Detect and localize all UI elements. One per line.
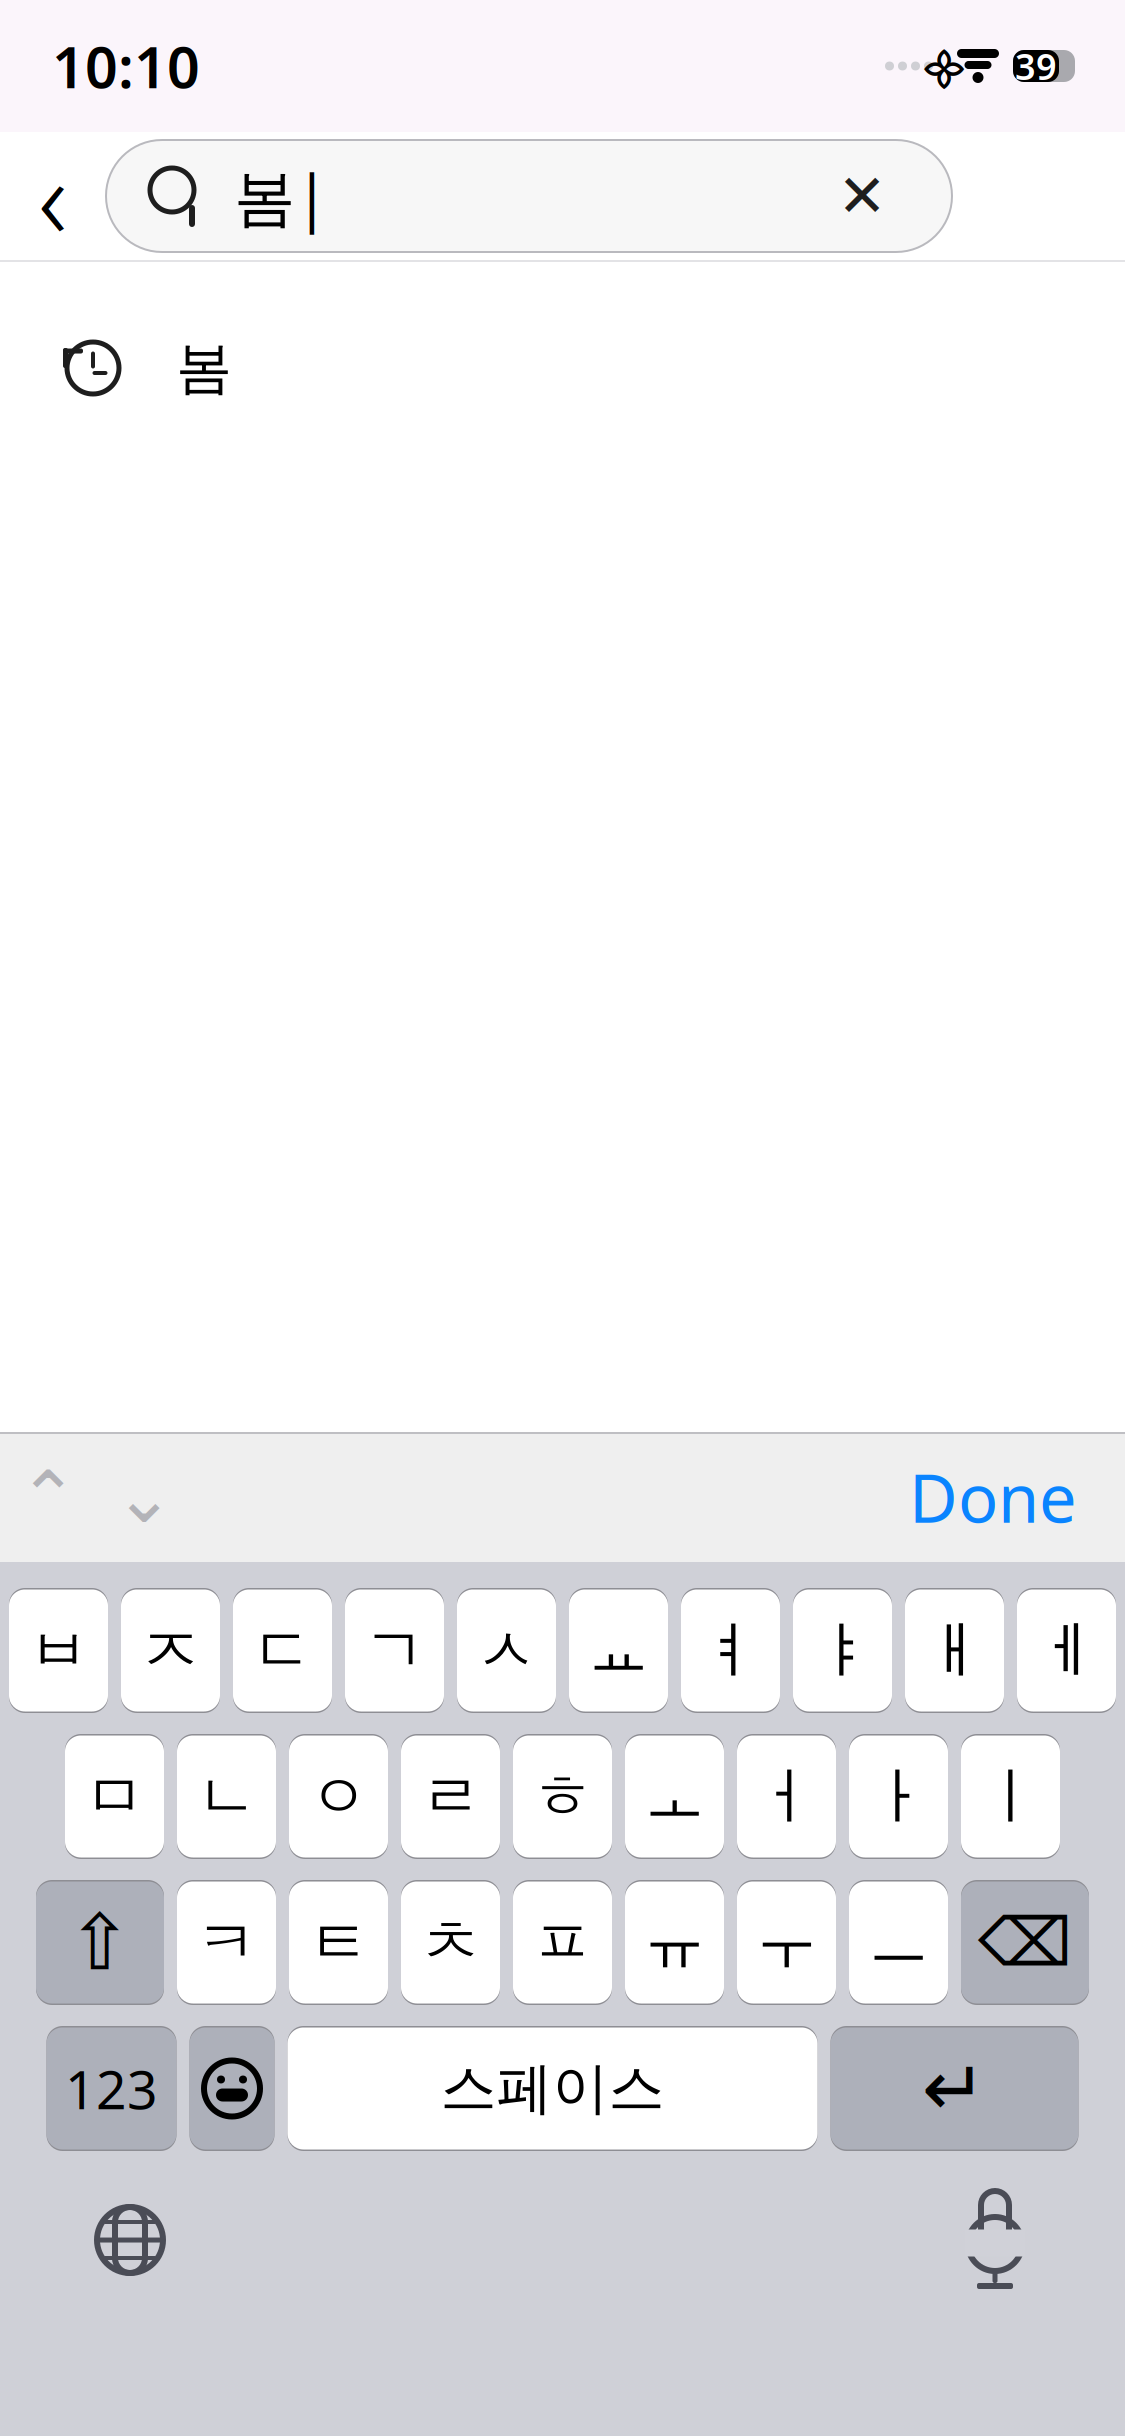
staticText: ㅔ xyxy=(1036,1613,1097,1688)
staticText: ㅎ xyxy=(532,1759,593,1834)
button[interactable]: ㅓ xyxy=(737,1734,836,1859)
staticText: 스페이스 xyxy=(440,2054,664,2123)
button[interactable]: ㅋ xyxy=(177,1880,276,2005)
staticText: ㄴ xyxy=(196,1759,257,1834)
button[interactable]: Done xyxy=(909,1442,1125,1552)
button[interactable]: ㄴ xyxy=(177,1734,276,1859)
button[interactable]: ㄹ xyxy=(401,1734,500,1859)
staticText: ⇧ xyxy=(67,1899,132,1986)
button[interactable]: ㅗ xyxy=(625,1734,724,1859)
staticText: ㅋ xyxy=(196,1905,257,1980)
staticText: ㅗ xyxy=(644,1759,705,1834)
staticText: ㅌ xyxy=(308,1905,369,1980)
staticText: ᯽ xyxy=(919,36,969,96)
button[interactable]: Next field xyxy=(96,1442,192,1552)
staticText: ✕ xyxy=(837,163,886,229)
staticText: ㅑ xyxy=(812,1613,873,1688)
staticText: 123 xyxy=(65,2053,158,2124)
button[interactable]: Search field xyxy=(106,140,952,252)
staticText: 봄 xyxy=(176,334,232,402)
staticText: ㄹ xyxy=(420,1759,481,1834)
button[interactable]: ㅁ xyxy=(65,1734,164,1859)
staticText: ㅂ xyxy=(28,1613,89,1688)
staticText: ㅁ xyxy=(84,1759,145,1834)
staticText: ⌃ xyxy=(18,1456,78,1538)
button[interactable]: ㅈ xyxy=(121,1588,220,1713)
staticText: ㅏ xyxy=(868,1759,929,1834)
button[interactable]: Shift xyxy=(36,1880,164,2005)
staticText: ㅜ xyxy=(756,1905,817,1980)
button[interactable]: ㅠ xyxy=(625,1880,724,2005)
staticText: ⌫ xyxy=(978,1905,1072,1980)
button[interactable]: ㄷ xyxy=(233,1588,332,1713)
staticText: ㅣ xyxy=(980,1759,1041,1834)
staticText: ㅌ xyxy=(308,1905,369,1980)
staticText: 10:10 xyxy=(52,28,200,104)
button[interactable]: Return xyxy=(830,2026,1078,2151)
staticText: ㅓ xyxy=(756,1759,817,1834)
button[interactable]: ㅡ xyxy=(849,1880,948,2005)
staticText: ㅈ xyxy=(140,1613,201,1688)
button[interactable]: ㅔ xyxy=(1017,1588,1116,1713)
staticText: ㅓ xyxy=(756,1759,817,1834)
staticText: ⌫ xyxy=(978,1905,1072,1980)
staticText: ㅊ xyxy=(420,1905,481,1980)
staticText: ㄴ xyxy=(196,1759,257,1834)
staticText: ㅔ xyxy=(1036,1613,1097,1688)
staticText: 봄| xyxy=(234,155,329,237)
button[interactable]: ㅣ xyxy=(961,1734,1060,1859)
button[interactable]: Emoji xyxy=(189,2026,274,2151)
staticText: ㅡ xyxy=(868,1905,929,1980)
staticText: ㄹ xyxy=(420,1759,481,1834)
staticText: ㅐ xyxy=(924,1613,985,1688)
staticText: ↵ xyxy=(922,2045,987,2132)
staticText: ㅛ xyxy=(588,1613,649,1688)
staticText: ㅐ xyxy=(924,1613,985,1688)
staticText: ㅏ xyxy=(868,1759,929,1834)
button[interactable]: ㅛ xyxy=(569,1588,668,1713)
button[interactable]: ㅌ xyxy=(289,1880,388,2005)
button[interactable]: ㅏ xyxy=(849,1734,948,1859)
staticText: ㄷ xyxy=(252,1613,313,1688)
staticText: ㄱ xyxy=(364,1613,425,1688)
staticText: 123 xyxy=(65,2053,158,2124)
button[interactable]: ㅅ xyxy=(457,1588,556,1713)
staticText: ㄱ xyxy=(364,1613,425,1688)
button[interactable]: ㅎ xyxy=(513,1734,612,1859)
button[interactable]: Delete xyxy=(961,1880,1089,2005)
staticText: 39 xyxy=(1015,42,1057,90)
button[interactable]: Next keyboard xyxy=(60,2175,200,2305)
staticText: ㅍ xyxy=(532,1905,593,1980)
staticText: ㅎ xyxy=(532,1759,593,1834)
staticText: ㅇ xyxy=(308,1759,369,1834)
button[interactable]: ㅊ xyxy=(401,1880,500,2005)
staticText: ㅋ xyxy=(196,1905,257,1980)
staticText: ㅡ xyxy=(868,1905,929,1980)
button[interactable]: Space xyxy=(287,2026,817,2151)
staticText: ㅅ xyxy=(476,1613,537,1688)
button[interactable]: ㄱ xyxy=(345,1588,444,1713)
staticText: ⇧ xyxy=(67,1899,132,1986)
button[interactable]: Previous field xyxy=(0,1442,96,1552)
staticText: ㅣ xyxy=(980,1759,1041,1834)
button[interactable]: Back xyxy=(0,136,106,256)
staticText: ㅠ xyxy=(644,1905,705,1980)
button[interactable]: Dictation xyxy=(925,2175,1065,2305)
staticText: ㅕ xyxy=(700,1613,761,1688)
staticText: ㅈ xyxy=(140,1613,201,1688)
staticText: ㅂ xyxy=(28,1613,89,1688)
staticText: ㅅ xyxy=(476,1613,537,1688)
staticText: ‹ xyxy=(38,122,68,270)
button[interactable]: ㅜ xyxy=(737,1880,836,2005)
staticText: ㅠ xyxy=(644,1905,705,1980)
staticText: ㅑ xyxy=(812,1613,873,1688)
button[interactable]: ㅍ xyxy=(513,1880,612,2005)
button[interactable]: ㅑ xyxy=(793,1588,892,1713)
button[interactable]: ㅂ xyxy=(9,1588,108,1713)
button[interactable]: 봄 xyxy=(0,302,1125,434)
button[interactable]: Numbers xyxy=(46,2026,176,2151)
button[interactable]: ㅇ xyxy=(289,1734,388,1859)
button[interactable]: ㅐ xyxy=(905,1588,1004,1713)
button[interactable]: ㅕ xyxy=(681,1588,780,1713)
staticText: ㅊ xyxy=(420,1905,481,1980)
